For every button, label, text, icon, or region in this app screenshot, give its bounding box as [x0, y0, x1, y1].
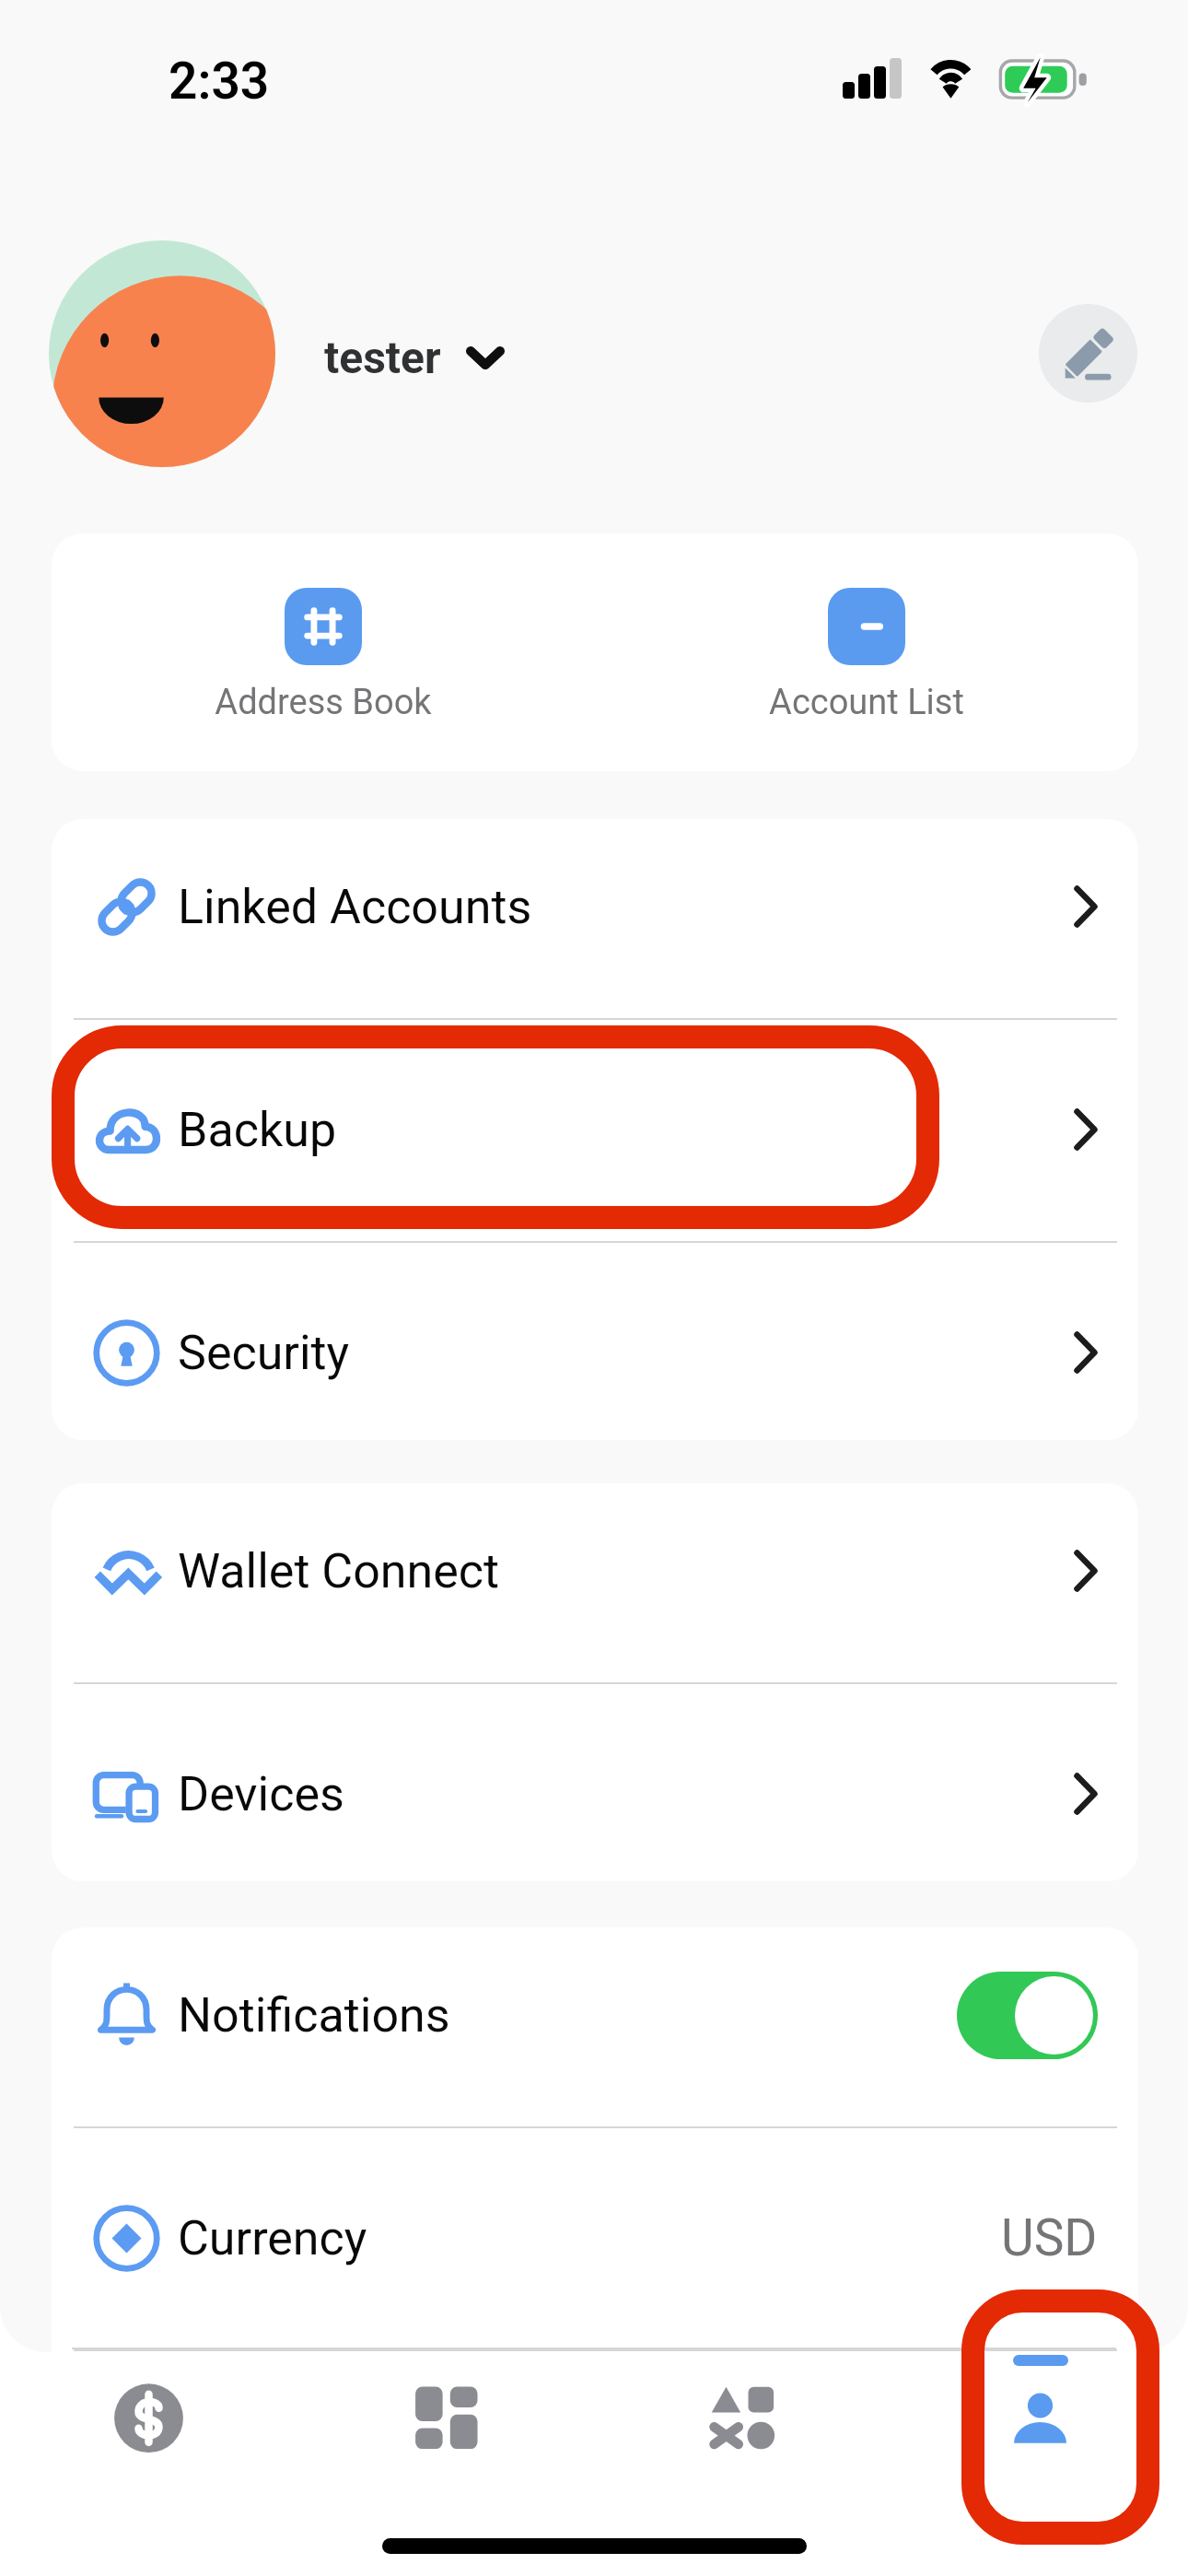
staticText: 2:33 — [169, 52, 270, 111]
button[interactable]: Edit profile — [1039, 304, 1137, 403]
button[interactable]: Currency — [52, 2126, 1138, 2349]
button[interactable]: Security — [52, 1241, 1138, 1440]
staticText: Account List — [769, 682, 964, 723]
button[interactable]: tester — [320, 324, 508, 391]
staticText: Security — [178, 1325, 350, 1381]
staticText: Address Book — [215, 682, 432, 723]
button[interactable]: Devices — [52, 1682, 1138, 1881]
button[interactable]: Wallet Connect — [52, 1483, 1138, 1682]
button[interactable]: Notifications — [52, 1927, 1138, 2126]
button[interactable]: Dashboard — [297, 2303, 595, 2488]
staticText: Devices — [178, 1766, 344, 1822]
button[interactable]: Address Book — [52, 533, 595, 771]
button[interactable]: Profile — [891, 2303, 1188, 2488]
button[interactable]: Profile avatar — [49, 240, 275, 467]
staticText: Notifications — [178, 1987, 450, 2043]
staticText: Linked Accounts — [178, 879, 532, 935]
staticText: Currency — [178, 2210, 367, 2266]
button[interactable]: Notifications toggle — [957, 1972, 1098, 2059]
button[interactable]: Dollar — [0, 2303, 297, 2488]
button[interactable]: Linked Accounts — [52, 819, 1138, 1018]
staticText: USD — [1001, 2208, 1098, 2267]
staticText: Wallet Connect — [178, 1543, 500, 1599]
button[interactable]: Account List — [595, 533, 1138, 771]
staticText: Backup — [178, 1102, 337, 1158]
button[interactable]: Shapes — [594, 2303, 891, 2488]
button[interactable]: Language — [52, 2349, 1138, 2352]
staticText: tester — [324, 332, 441, 383]
button[interactable]: Backup — [52, 1018, 1138, 1241]
